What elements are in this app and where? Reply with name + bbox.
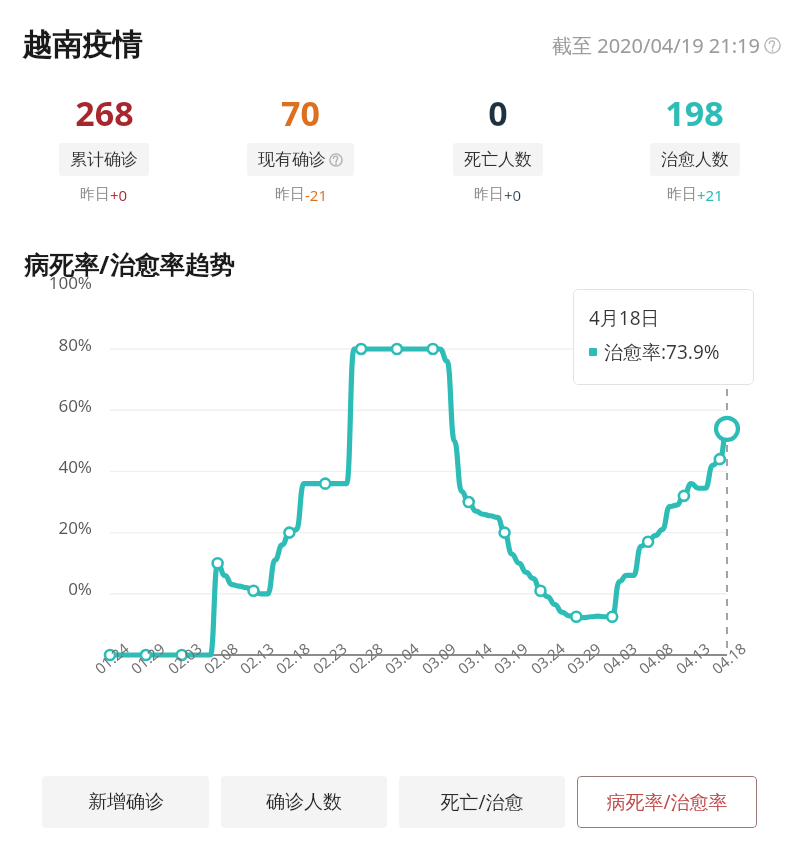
staticText: 04.18 xyxy=(686,638,750,696)
staticText: 0% xyxy=(0,577,92,600)
staticText: 60% xyxy=(0,394,92,417)
staticText: 02.23 xyxy=(287,638,351,696)
staticText: 治愈率:73.9% xyxy=(604,339,720,365)
staticText: +21 xyxy=(697,185,723,205)
staticText: 病死率/治愈率趋势 xyxy=(24,247,235,281)
staticText: 死亡人数 xyxy=(464,149,532,170)
staticText: 03.09 xyxy=(396,638,460,696)
staticText: 昨日 xyxy=(275,185,305,204)
staticText: 40% xyxy=(0,455,92,478)
staticText: +0 xyxy=(504,185,522,205)
button[interactable]: 确诊人数 xyxy=(221,776,387,828)
staticText: 昨日 xyxy=(474,185,504,204)
button[interactable]: 70 xyxy=(202,90,399,205)
staticText: 04.03 xyxy=(577,638,641,696)
button[interactable]: 死亡/治愈 xyxy=(399,776,565,828)
button[interactable]: 新增确诊 xyxy=(42,776,209,828)
staticText: 03.19 xyxy=(468,638,532,696)
staticText: 03.14 xyxy=(432,638,496,696)
staticText: -21 xyxy=(305,185,327,205)
button[interactable]: 截至 2020/04/19 21:19 xyxy=(552,32,781,59)
staticText: 新增确诊 xyxy=(88,790,164,814)
staticText: 04.13 xyxy=(650,638,714,696)
staticText: 100% xyxy=(0,271,92,294)
staticText: 越南疫情 xyxy=(22,26,142,64)
staticText: 截至 2020/04/19 21:19 xyxy=(552,32,760,59)
staticText: 昨日 xyxy=(667,185,697,204)
staticText: 02.08 xyxy=(178,638,242,696)
staticText: 累计确诊 xyxy=(70,149,138,170)
staticText: +0 xyxy=(110,185,128,205)
staticText: 01.24 xyxy=(69,638,133,696)
staticText: 昨日 xyxy=(80,185,110,204)
staticText: 198 xyxy=(665,90,724,136)
staticText: 病死率/治愈率 xyxy=(606,789,728,815)
staticText: 03.24 xyxy=(505,638,569,696)
staticText: 02.18 xyxy=(250,638,314,696)
staticText: 确诊人数 xyxy=(266,790,342,814)
button[interactable]: 198 xyxy=(596,90,793,205)
staticText: 0 xyxy=(488,90,508,136)
staticText: 03.29 xyxy=(541,638,605,696)
staticText: 04.08 xyxy=(613,638,677,696)
staticText: 20% xyxy=(0,516,92,539)
other: 说明 xyxy=(764,37,781,54)
staticText: 治愈人数 xyxy=(661,149,729,170)
staticText: 02.03 xyxy=(142,638,206,696)
staticText: 02.28 xyxy=(323,638,387,696)
staticText: 死亡/治愈 xyxy=(440,789,524,815)
staticText: 03.04 xyxy=(359,638,423,696)
staticText: 01.29 xyxy=(105,638,169,696)
staticText: 80% xyxy=(0,333,92,356)
button[interactable]: 0 xyxy=(399,90,596,205)
staticText: 268 xyxy=(75,90,134,136)
button[interactable]: 病死率/治愈率 xyxy=(577,776,757,828)
staticText: 4月18日 xyxy=(589,305,660,331)
staticText: 02.13 xyxy=(214,638,278,696)
staticText: 现有确诊 xyxy=(258,149,326,170)
staticText: 70 xyxy=(281,90,320,136)
button[interactable]: 268 xyxy=(6,90,202,205)
